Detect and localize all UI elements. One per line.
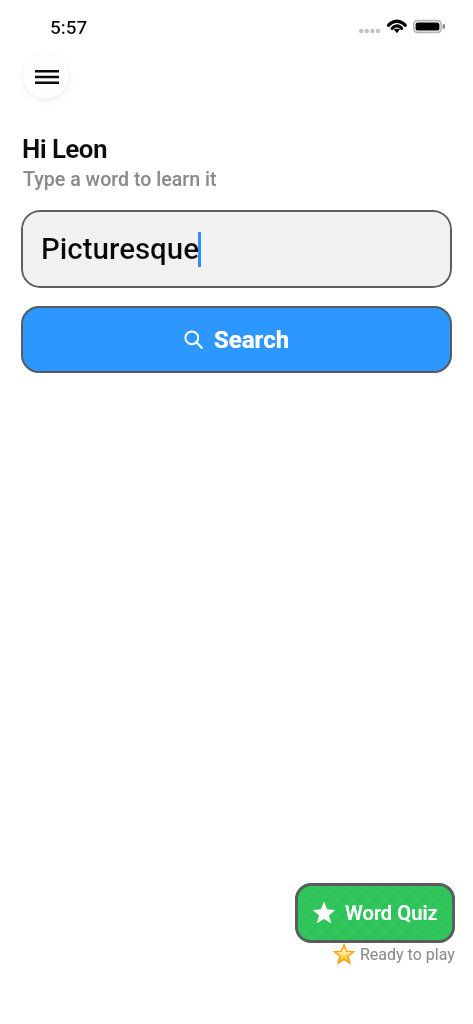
staticText: 5:57 — [50, 16, 88, 38]
staticText: Word Quiz — [345, 901, 438, 925]
button[interactable]: Menu — [23, 53, 69, 99]
staticText: Type a word to learn it — [23, 168, 217, 191]
staticText: Hi Leon — [22, 134, 107, 164]
staticText: Search — [214, 326, 290, 354]
button[interactable]: Search — [21, 306, 452, 373]
staticText: Picturesque — [41, 232, 200, 267]
button[interactable]: Word Quiz — [295, 883, 455, 943]
button[interactable]: Picturesque — [21, 210, 452, 288]
staticText: Ready to play — [360, 945, 455, 964]
